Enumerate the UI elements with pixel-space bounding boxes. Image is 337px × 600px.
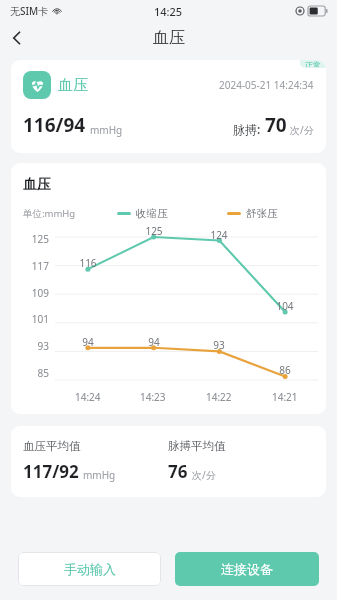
staticText: 无SIM卡 xyxy=(10,4,49,18)
staticText: 脉搏: xyxy=(233,121,261,137)
staticText: mmHg xyxy=(90,123,123,137)
staticText: 14:23 xyxy=(140,390,166,404)
staticText: 101 xyxy=(31,312,49,326)
staticText: 104 xyxy=(272,299,298,313)
button[interactable]: 血压平均值 xyxy=(11,426,326,497)
staticText: 单位:mmHg xyxy=(23,207,76,220)
staticText: 血压 xyxy=(58,76,88,95)
button[interactable]: 手动输入 xyxy=(18,552,161,586)
staticText: 血压平均值 xyxy=(23,439,81,453)
staticText: mmHg xyxy=(83,468,116,482)
staticText: 94 xyxy=(141,335,167,349)
staticText: 14:25 xyxy=(154,4,183,19)
staticText: 脉搏平均值 xyxy=(168,439,226,453)
button[interactable]: Back xyxy=(0,22,34,54)
staticText: 次/分 xyxy=(290,123,314,137)
button[interactable]: 连接设备 xyxy=(175,552,319,586)
staticText: 86 xyxy=(272,363,298,377)
button[interactable]: 收缩压 xyxy=(117,207,168,220)
button[interactable]: 正常 xyxy=(11,60,326,153)
staticText: 连接设备 xyxy=(221,561,273,577)
staticText: 手动输入 xyxy=(64,561,116,577)
staticText: 117 xyxy=(31,259,49,273)
staticText: 14:24 xyxy=(75,390,101,404)
staticText: 125 xyxy=(141,224,167,238)
staticText: 次/分 xyxy=(192,468,216,482)
staticText: 76 xyxy=(168,460,188,483)
staticText: 14:21 xyxy=(272,390,298,404)
staticText: 2024-05-21 14:24:34 xyxy=(219,78,314,92)
button[interactable]: 舒张压 xyxy=(227,207,278,220)
staticText: 血压 xyxy=(23,176,51,194)
staticText: 正常 xyxy=(305,60,321,67)
staticText: 舒张压 xyxy=(246,207,278,220)
staticText: 93 xyxy=(37,339,49,353)
staticText: 125 xyxy=(31,232,49,246)
staticText: 70 xyxy=(265,112,287,138)
staticText: 14:22 xyxy=(206,390,232,404)
staticText: 85 xyxy=(37,366,49,380)
staticText: 93 xyxy=(206,338,232,352)
staticText: 117/92 xyxy=(23,460,79,483)
staticText: 116/94 xyxy=(23,112,86,138)
staticText: 116 xyxy=(75,256,101,270)
staticText: 124 xyxy=(206,228,232,242)
staticText: 94 xyxy=(75,335,101,349)
staticText: 血压 xyxy=(153,28,185,48)
staticText: 收缩压 xyxy=(136,207,168,220)
staticText: 109 xyxy=(31,286,49,300)
